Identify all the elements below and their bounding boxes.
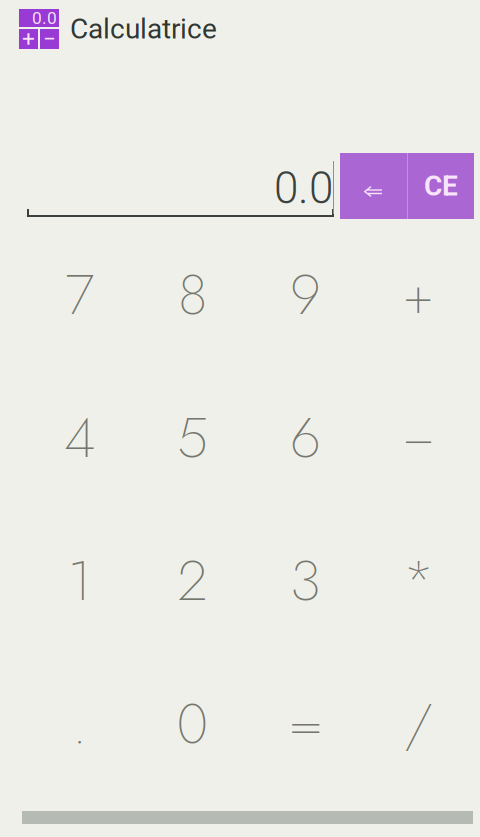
staticText: 6 bbox=[290, 397, 321, 478]
staticText: − bbox=[43, 26, 56, 52]
button[interactable]: 3 bbox=[249, 509, 362, 652]
button[interactable]: − bbox=[362, 366, 475, 509]
staticText: . bbox=[72, 683, 87, 764]
staticText: * bbox=[402, 540, 435, 621]
button[interactable]: * bbox=[362, 509, 475, 652]
staticText: 8 bbox=[178, 254, 207, 335]
button[interactable]: 6 bbox=[249, 366, 362, 509]
staticText: + bbox=[402, 254, 434, 335]
button[interactable]: = bbox=[249, 652, 362, 795]
button[interactable]: 8 bbox=[136, 223, 249, 366]
staticText: / bbox=[405, 683, 432, 764]
staticText: 0 bbox=[176, 683, 208, 764]
button[interactable]: 1 bbox=[23, 509, 136, 652]
staticText: CE bbox=[424, 170, 458, 202]
staticText: 1 bbox=[67, 540, 91, 621]
button[interactable]: 0 bbox=[136, 652, 249, 795]
staticText: = bbox=[288, 683, 322, 764]
button[interactable]: Backspace bbox=[340, 153, 407, 219]
staticText: Calculatrice bbox=[70, 13, 217, 45]
staticText: 0.0 bbox=[32, 8, 57, 28]
button[interactable]: + bbox=[362, 223, 475, 366]
staticText: 9 bbox=[290, 254, 321, 335]
button[interactable]: / bbox=[362, 652, 475, 795]
staticText: 0.0 bbox=[274, 162, 333, 214]
button[interactable]: 2 bbox=[136, 509, 249, 652]
button[interactable]: 9 bbox=[249, 223, 362, 366]
staticText: 5 bbox=[177, 397, 208, 478]
button[interactable]: 5 bbox=[136, 366, 249, 509]
staticText: − bbox=[402, 397, 435, 478]
button[interactable]: 7 bbox=[23, 223, 136, 366]
staticText: 7 bbox=[65, 254, 94, 335]
button[interactable]: 4 bbox=[23, 366, 136, 509]
staticText: 2 bbox=[177, 540, 207, 621]
staticText: + bbox=[22, 26, 35, 52]
staticText: 3 bbox=[290, 540, 321, 621]
staticText: 4 bbox=[64, 397, 95, 478]
button[interactable]: CE bbox=[408, 153, 474, 219]
